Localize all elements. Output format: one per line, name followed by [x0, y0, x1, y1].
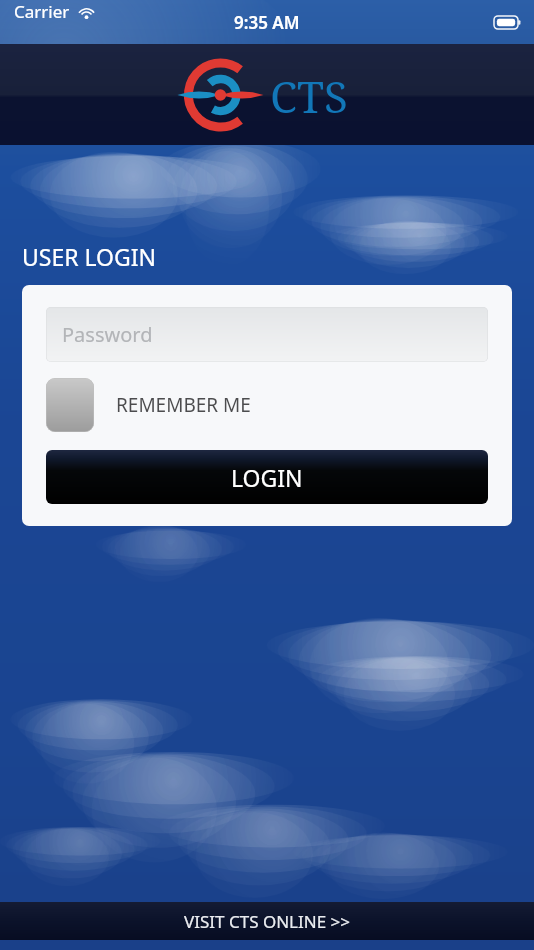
staticText: LOGIN — [231, 462, 303, 493]
staticText: USER LOGIN — [22, 241, 157, 272]
button[interactable]: REMEMBER ME — [46, 378, 251, 432]
staticText: CTS — [270, 66, 348, 126]
button[interactable]: VISIT CTS ONLINE >> — [0, 902, 534, 940]
staticText: 9:35 AM — [234, 11, 300, 34]
staticText: Carrier — [14, 0, 70, 23]
staticText: VISIT CTS ONLINE >> — [184, 910, 350, 933]
staticText: REMEMBER ME — [116, 392, 251, 418]
staticText: Password — [62, 321, 153, 348]
button[interactable]: Password — [46, 307, 488, 362]
button[interactable]: LOGIN — [46, 450, 488, 504]
